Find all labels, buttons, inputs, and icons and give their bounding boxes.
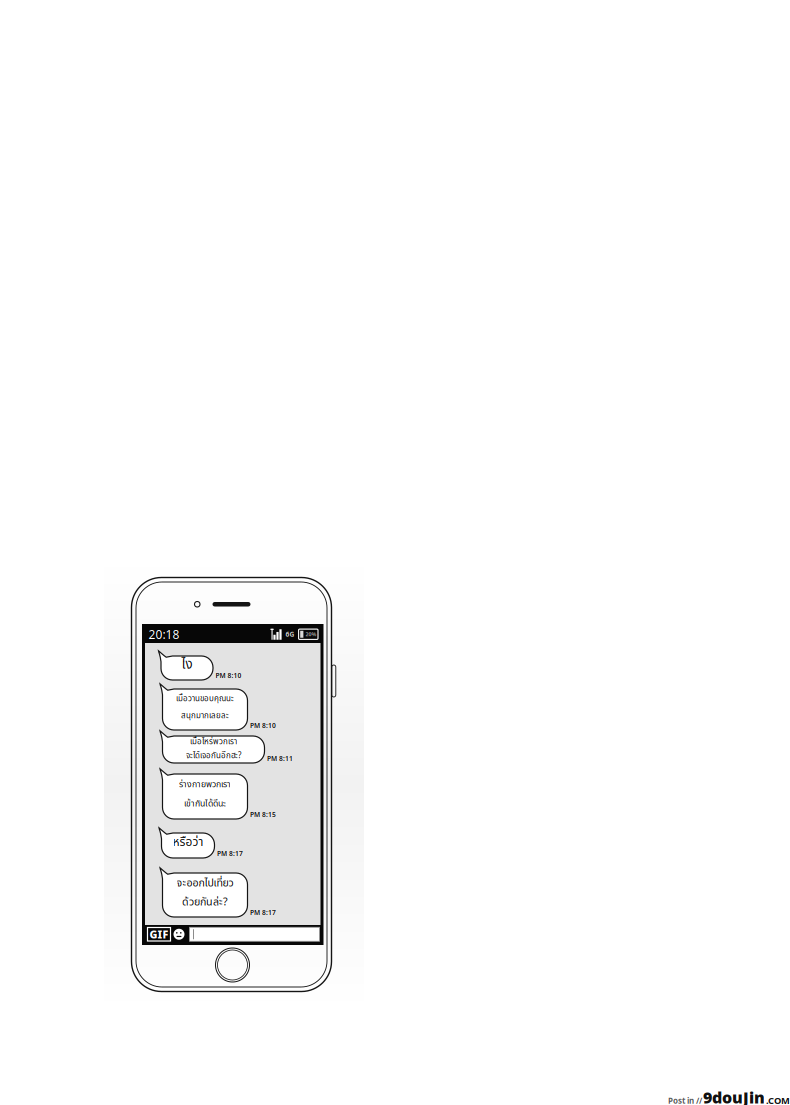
staticText: 20% bbox=[305, 631, 316, 638]
button[interactable]: เมื่อไหร่พวกเรา bbox=[162, 729, 264, 763]
button[interactable]: Message field bbox=[189, 927, 319, 941]
staticText: PM 8:10 bbox=[215, 671, 241, 680]
staticText: สนุกมากเลยละ bbox=[181, 710, 229, 722]
staticText: ด้วยกันล่ะ? bbox=[182, 894, 228, 910]
staticText: GIF bbox=[149, 927, 168, 941]
staticText: PM 8:17 bbox=[250, 908, 276, 917]
staticText: จะได้เจอกันอีกฮะ? bbox=[186, 750, 241, 762]
button[interactable]: Send a GIF bbox=[147, 927, 170, 941]
staticText: PM 8:15 bbox=[250, 810, 276, 819]
staticText: จะออกไปเที่ยว bbox=[176, 875, 233, 891]
button[interactable]: หรือว่า bbox=[161, 826, 214, 858]
button[interactable]: Emoji keyboard bbox=[173, 929, 184, 940]
button[interactable]: จะออกไปเที่ยว bbox=[162, 866, 247, 917]
staticText: ไง bbox=[181, 655, 192, 675]
staticText: .COM bbox=[766, 1094, 790, 1105]
staticText: หรือว่า bbox=[172, 833, 203, 851]
button[interactable]: ร่างกายพวกเรา bbox=[162, 767, 247, 819]
staticText: เมื่อวานขอบคุณนะ bbox=[176, 693, 234, 705]
staticText: เมื่อไหร่พวกเรา bbox=[190, 736, 237, 748]
staticText: PM 8:10 bbox=[250, 721, 276, 730]
staticText: เข้ากันได้ดีนะ bbox=[184, 797, 226, 810]
button[interactable]: Home bbox=[215, 948, 249, 982]
staticText: PM 8:17 bbox=[217, 849, 243, 858]
staticText: 20:18 bbox=[148, 626, 179, 642]
button[interactable]: เมื่อวานขอบคุณนะ bbox=[162, 682, 247, 730]
staticText: Post in // bbox=[668, 1095, 702, 1105]
staticText: 9douJin bbox=[703, 1087, 765, 1105]
button[interactable]: ไง bbox=[161, 649, 213, 680]
staticText: PM 8:11 bbox=[267, 754, 293, 763]
staticText: ร่างกายพวกเรา bbox=[179, 778, 231, 791]
staticText: 6G bbox=[286, 630, 295, 639]
